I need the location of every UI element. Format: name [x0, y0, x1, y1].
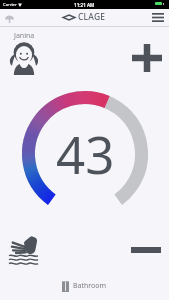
staticText: Carrier — [3, 2, 17, 8]
button[interactable]: Water mode — [6, 232, 41, 267]
button[interactable]: Bathroom — [62, 279, 107, 292]
staticText: Janina — [14, 31, 35, 41]
staticText: 11:21 AM — [74, 2, 95, 8]
button[interactable]: Shower — [2, 11, 16, 25]
button[interactable]: Janina — [8, 31, 40, 75]
button[interactable]: Menu — [150, 9, 166, 25]
button[interactable]: Increase temperature — [130, 42, 163, 74]
staticText: 43 — [56, 119, 115, 188]
button[interactable]: Decrease temperature — [128, 234, 163, 265]
staticText: Bathroom — [73, 281, 107, 291]
staticText: CLAGE — [78, 11, 106, 23]
